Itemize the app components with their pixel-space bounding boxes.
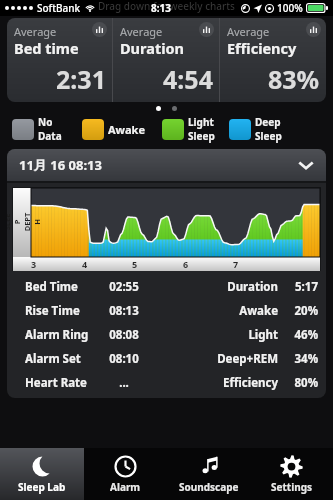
button[interactable]: Light: [162, 115, 215, 143]
staticText: 4: [82, 258, 88, 270]
staticText: Awake: [108, 122, 146, 137]
staticText: 11月 16 08:13: [19, 156, 102, 174]
button[interactable]: Awake: [82, 119, 146, 140]
staticText: Settings: [271, 480, 312, 494]
button[interactable]: Show chart: [199, 22, 214, 37]
staticText: Light: [204, 327, 278, 343]
staticText: Sleep Lab: [18, 480, 66, 494]
staticText: 100%: [277, 1, 303, 15]
staticText: 08:10: [99, 351, 149, 367]
staticText: SoftBank: [37, 1, 81, 15]
staticText: Bed time: [14, 38, 79, 58]
button[interactable]: Alarm: [84, 448, 167, 500]
staticText: Light: [188, 115, 214, 129]
staticText: 02:55: [99, 279, 149, 295]
staticText: ...: [99, 375, 149, 391]
staticText: 08:13: [99, 303, 149, 319]
button[interactable]: Sleep Lab: [0, 448, 84, 500]
staticText: Alarm Set: [25, 351, 99, 367]
staticText: 5: [132, 258, 138, 270]
staticText: Sleep: [188, 129, 215, 143]
staticText: 08:08: [99, 327, 149, 343]
staticText: Deep: [255, 115, 281, 129]
staticText: 3: [31, 258, 37, 270]
staticText: Deep+REM: [204, 351, 278, 367]
staticText: 20%: [278, 303, 318, 319]
staticText: Duration: [204, 279, 278, 295]
button[interactable]: Alarm Set: [7, 347, 326, 371]
button[interactable]: 11月 16 08:13: [7, 149, 326, 181]
staticText: Average: [120, 24, 163, 39]
staticText: Sleep: [255, 129, 282, 143]
staticText: Efficiency: [227, 38, 297, 58]
staticText: Heart Rate: [25, 375, 99, 391]
staticText: Drag down for weekly charts: [98, 0, 235, 13]
button[interactable]: Soundscape: [167, 448, 250, 500]
button[interactable]: Bed Time: [7, 275, 326, 299]
staticText: 7: [233, 258, 239, 270]
button[interactable]: Show chart: [92, 22, 107, 37]
staticText: Soundscape: [179, 480, 239, 494]
button[interactable]: Deep: [229, 115, 282, 143]
button[interactable]: Settings: [250, 448, 333, 500]
other: Collapse: [298, 157, 314, 173]
button[interactable]: Average: [220, 18, 326, 102]
button[interactable]: Alarm Ring: [7, 323, 326, 347]
button[interactable]: Show chart: [306, 22, 321, 37]
staticText: 4:54: [163, 62, 213, 96]
staticText: 5:17: [278, 279, 318, 295]
staticText: Average: [227, 24, 270, 39]
staticText: 34%: [278, 351, 318, 367]
staticText: Alarm: [110, 480, 141, 494]
staticText: Alarm Ring: [25, 327, 99, 343]
staticText: Awake: [204, 303, 278, 319]
staticText: Average: [14, 24, 57, 39]
staticText: 80%: [278, 375, 318, 391]
staticText: No: [38, 115, 53, 129]
button[interactable]: Heart Rate: [7, 371, 326, 395]
button[interactable]: No: [12, 115, 62, 143]
staticText: 6: [183, 258, 189, 270]
button[interactable]: Average: [113, 18, 219, 102]
staticText: 2:31: [56, 62, 106, 96]
staticText: Bed Time: [25, 279, 99, 295]
button[interactable]: Rise Time: [7, 299, 326, 323]
staticText: Rise Time: [25, 303, 99, 319]
staticText: 83%: [268, 62, 320, 96]
staticText: SLEEP DEPTH: [7, 212, 42, 232]
staticText: Data: [38, 129, 62, 143]
staticText: Efficiency: [204, 375, 278, 391]
staticText: Duration: [120, 38, 185, 58]
staticText: 8:13: [151, 1, 171, 15]
button[interactable]: Average: [7, 18, 112, 102]
staticText: 46%: [278, 327, 318, 343]
